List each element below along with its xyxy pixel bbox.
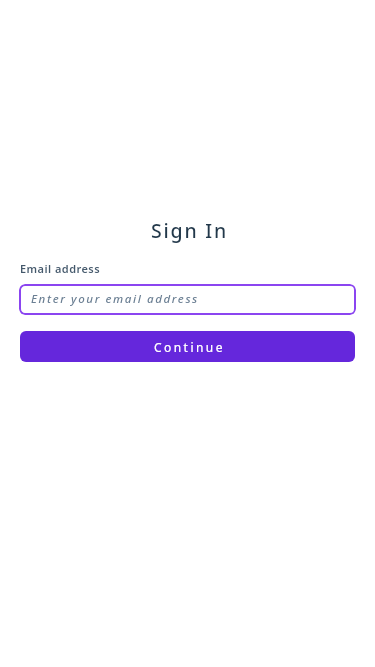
button[interactable]: Enter your email address — [19, 284, 356, 315]
button[interactable]: Continue — [20, 331, 355, 362]
staticText: Email address — [20, 261, 101, 276]
staticText: Continue — [154, 339, 225, 355]
staticText: Enter your email address — [31, 291, 199, 307]
staticText: Sign In — [2, 217, 375, 244]
